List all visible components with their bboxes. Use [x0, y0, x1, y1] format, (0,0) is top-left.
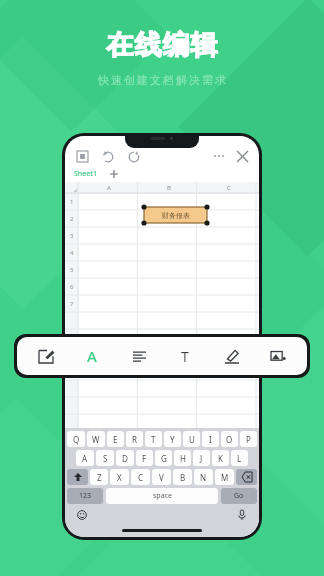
staticText: J — [200, 453, 203, 464]
button[interactable]: C — [131, 469, 150, 485]
staticText: H — [180, 453, 186, 464]
button[interactable]: Save — [72, 146, 92, 166]
button[interactable]: Redo — [124, 146, 144, 166]
staticText: F — [142, 453, 147, 464]
staticText: T — [181, 347, 189, 366]
staticText: N — [200, 472, 207, 483]
staticText: 1 — [70, 198, 74, 206]
staticText: A — [107, 184, 111, 192]
staticText: R — [132, 434, 137, 445]
button[interactable]: F — [136, 450, 153, 466]
button[interactable]: 财务报表 — [144, 207, 207, 223]
button[interactable]: S — [96, 450, 114, 466]
button[interactable]: Backspace — [236, 469, 257, 485]
button[interactable]: D — [116, 450, 134, 466]
staticText: K — [218, 453, 223, 464]
button[interactable]: J — [193, 450, 210, 466]
staticText: T — [151, 434, 156, 445]
staticText: B — [180, 472, 186, 483]
staticText: Sheet1 — [74, 169, 97, 179]
button[interactable]: Voice input — [233, 506, 251, 524]
staticText: W — [92, 434, 100, 445]
staticText: C — [227, 184, 231, 192]
staticText: Y — [170, 434, 175, 445]
button[interactable]: Edit — [27, 337, 65, 375]
staticText: G — [161, 453, 167, 464]
button[interactable]: U — [183, 431, 200, 447]
staticText: 123 — [79, 491, 92, 501]
button[interactable]: Close — [232, 146, 252, 166]
staticText: 4 — [70, 249, 74, 257]
button[interactable]: O — [221, 431, 238, 447]
button[interactable]: Font color — [73, 337, 111, 375]
button[interactable]: R — [126, 431, 143, 447]
button[interactable]: B — [173, 469, 192, 485]
button[interactable]: Add sheet — [105, 166, 123, 182]
button[interactable]: Highlight — [213, 337, 251, 375]
staticText: A — [87, 346, 97, 366]
staticText: 快速创建文档解决需求 — [97, 73, 227, 87]
button[interactable]: M — [215, 469, 234, 485]
button[interactable]: Emoji — [73, 506, 91, 524]
staticText: E — [113, 434, 118, 445]
button[interactable]: Sheet1 — [65, 166, 105, 182]
button[interactable]: A — [76, 450, 94, 466]
button[interactable]: N — [194, 469, 213, 485]
staticText: 财务报表 — [162, 211, 190, 220]
button[interactable]: More — [209, 146, 229, 166]
staticText: 3 — [70, 232, 74, 240]
button[interactable]: L — [231, 450, 248, 466]
staticText: S — [103, 453, 108, 464]
staticText: M — [221, 472, 229, 483]
staticText: Go — [234, 491, 244, 501]
button[interactable]: space — [106, 488, 218, 504]
staticText: D — [122, 453, 128, 464]
staticText: I — [209, 434, 212, 445]
button[interactable]: Go — [221, 488, 257, 504]
staticText: V — [159, 472, 164, 483]
staticText: P — [246, 434, 251, 445]
button[interactable]: I — [202, 431, 219, 447]
button[interactable]: Y — [164, 431, 181, 447]
button[interactable]: Q — [67, 431, 85, 447]
staticText: Z — [97, 472, 102, 483]
button[interactable]: 123 — [67, 488, 103, 504]
button[interactable]: Insert image — [259, 337, 297, 375]
button[interactable]: W — [87, 431, 105, 447]
button[interactable]: P — [240, 431, 257, 447]
button[interactable]: Undo — [98, 146, 118, 166]
button[interactable]: Align — [120, 337, 158, 375]
staticText: space — [153, 491, 172, 501]
staticText: L — [237, 453, 242, 464]
staticText: 5 — [70, 266, 74, 274]
staticText: 在线编辑 — [106, 28, 218, 62]
button[interactable]: Shift — [67, 469, 88, 485]
staticText: O — [226, 434, 233, 445]
staticText: Q — [73, 434, 80, 445]
button[interactable]: E — [107, 431, 124, 447]
button[interactable]: X — [110, 469, 129, 485]
button[interactable]: V — [152, 469, 171, 485]
button[interactable]: Z — [90, 469, 108, 485]
staticText: 7 — [70, 300, 74, 308]
staticText: X — [117, 472, 122, 483]
button[interactable]: H — [174, 450, 191, 466]
button[interactable]: G — [155, 450, 172, 466]
button[interactable]: Text — [166, 337, 204, 375]
staticText: C — [138, 472, 144, 483]
staticText: 2 — [70, 215, 74, 223]
staticText: B — [167, 184, 171, 192]
button[interactable]: K — [212, 450, 229, 466]
staticText: 6 — [70, 283, 74, 291]
button[interactable]: T — [145, 431, 162, 447]
staticText: A — [82, 453, 88, 464]
staticText: U — [189, 434, 195, 445]
